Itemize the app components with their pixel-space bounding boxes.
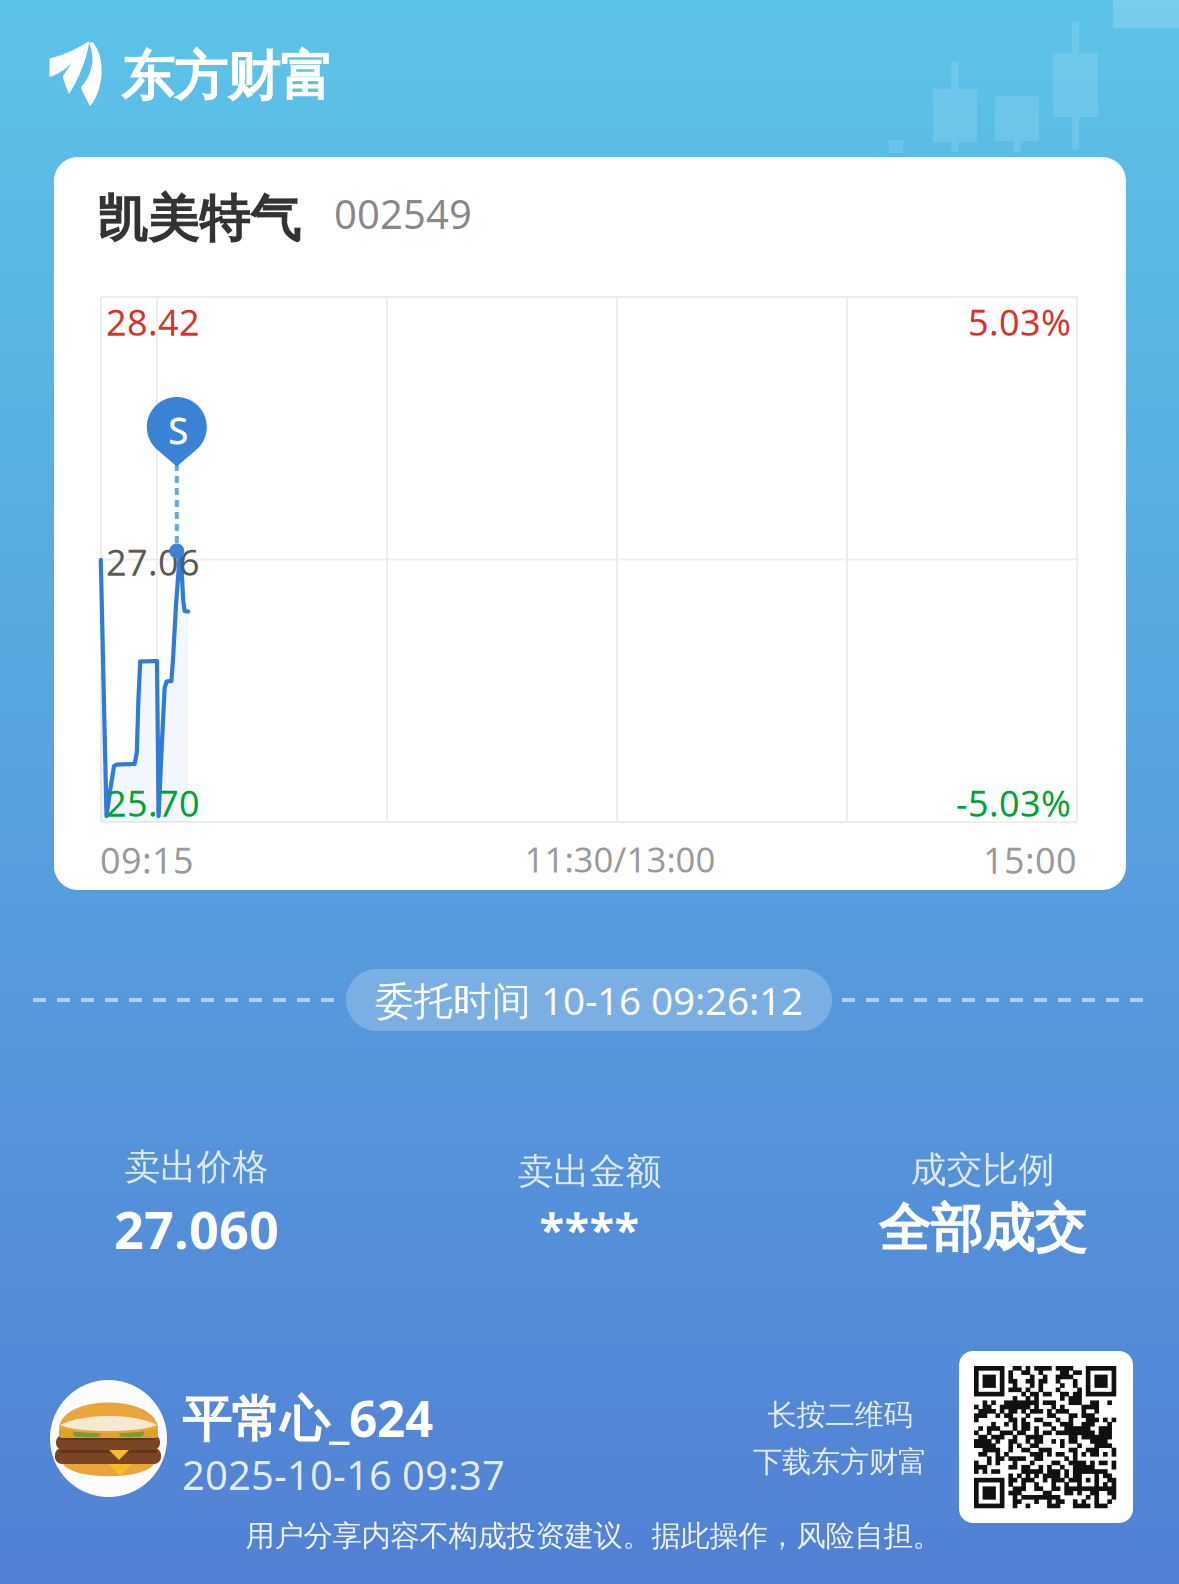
staticText: ****	[539, 1199, 639, 1259]
staticText: 卖出价格	[124, 1145, 268, 1189]
staticText: 002549	[334, 187, 472, 240]
staticText: 25.70	[106, 779, 200, 827]
staticText: 11:30/13:00	[524, 836, 715, 882]
staticText: 平常心_624	[182, 1385, 433, 1450]
staticText: S	[168, 405, 189, 455]
staticText: 27.06	[106, 538, 200, 586]
staticText: 下载东方财富	[753, 1444, 927, 1480]
staticText: 5.03%	[968, 298, 1071, 346]
staticText: -5.03%	[956, 779, 1071, 827]
staticText: 卖出金额	[517, 1149, 661, 1194]
staticText: 用户分享内容不构成投资建议。据此操作，风险自担。	[245, 1518, 941, 1554]
staticText: 东方财富	[121, 44, 333, 109]
staticText: 2025-10-16 09:37	[182, 1448, 505, 1501]
button[interactable]: 委托时间 10-16 09:26:12	[346, 969, 832, 1031]
staticText: 15:00	[983, 836, 1077, 884]
staticText: 长按二维码	[767, 1397, 912, 1433]
staticText: 27.060	[114, 1194, 279, 1263]
staticText: 28.42	[106, 298, 200, 346]
staticText: 09:15	[100, 836, 194, 884]
staticText: 凯美特气	[97, 188, 301, 250]
staticText: 成交比例	[910, 1148, 1054, 1192]
staticText: 全部成交	[878, 1197, 1086, 1261]
staticText: 委托时间 10-16 09:26:12	[375, 974, 803, 1026]
